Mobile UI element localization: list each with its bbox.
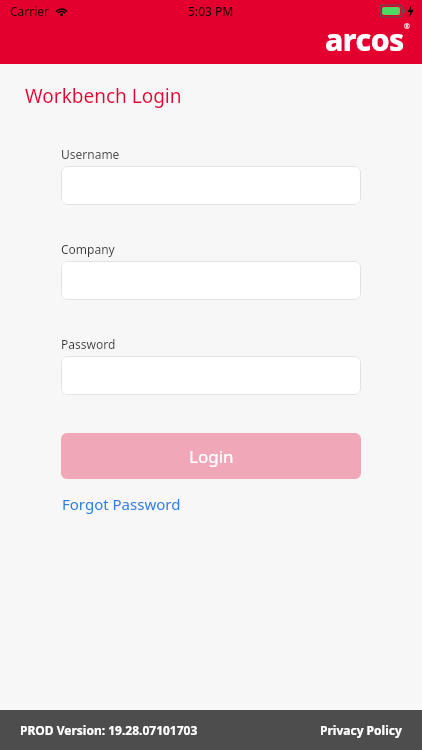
button[interactable] <box>61 261 361 300</box>
staticText: 5:03 PM <box>188 3 234 19</box>
staticText: Password <box>61 336 116 352</box>
staticText: Username <box>61 146 120 162</box>
staticText: Carrier <box>10 3 50 19</box>
staticText: Privacy Policy <box>320 722 402 738</box>
staticText: arcos <box>325 19 404 60</box>
staticText: Login <box>189 445 234 468</box>
staticText: Company <box>61 241 115 257</box>
staticText: ® <box>404 22 410 32</box>
staticText: Workbench Login <box>25 83 182 109</box>
button[interactable]: Privacy Policy <box>312 718 422 742</box>
button[interactable] <box>61 166 361 205</box>
staticText: Forgot Password <box>62 494 181 514</box>
button[interactable]: Login <box>61 433 361 479</box>
button[interactable] <box>61 356 361 395</box>
button[interactable]: Forgot Password <box>61 491 182 517</box>
staticText: PROD Version: 19.28.07101703 <box>20 722 198 738</box>
